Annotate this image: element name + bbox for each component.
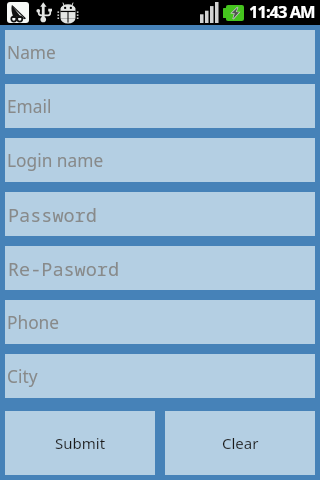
staticText: Email bbox=[7, 95, 52, 119]
button[interactable]: Email bbox=[5, 84, 315, 128]
button[interactable]: Submit bbox=[5, 411, 155, 475]
staticText: Password bbox=[8, 202, 97, 227]
button[interactable]: Phone bbox=[5, 300, 315, 344]
staticText: 11:43 AM bbox=[249, 0, 315, 22]
staticText: Name bbox=[7, 41, 56, 65]
staticText: City bbox=[7, 365, 38, 389]
staticText: Login name bbox=[7, 149, 104, 173]
button[interactable]: Login name bbox=[5, 138, 315, 182]
button[interactable]: Password bbox=[5, 192, 315, 236]
staticText: Re-Pasword bbox=[8, 256, 120, 281]
staticText: Submit bbox=[55, 433, 106, 453]
button[interactable]: Clear bbox=[165, 411, 315, 475]
button[interactable]: Re-Pasword bbox=[5, 246, 315, 290]
staticText: Phone bbox=[7, 311, 60, 335]
staticText: Clear bbox=[222, 433, 259, 453]
button[interactable]: Name bbox=[5, 30, 315, 74]
button[interactable]: City bbox=[5, 354, 315, 398]
